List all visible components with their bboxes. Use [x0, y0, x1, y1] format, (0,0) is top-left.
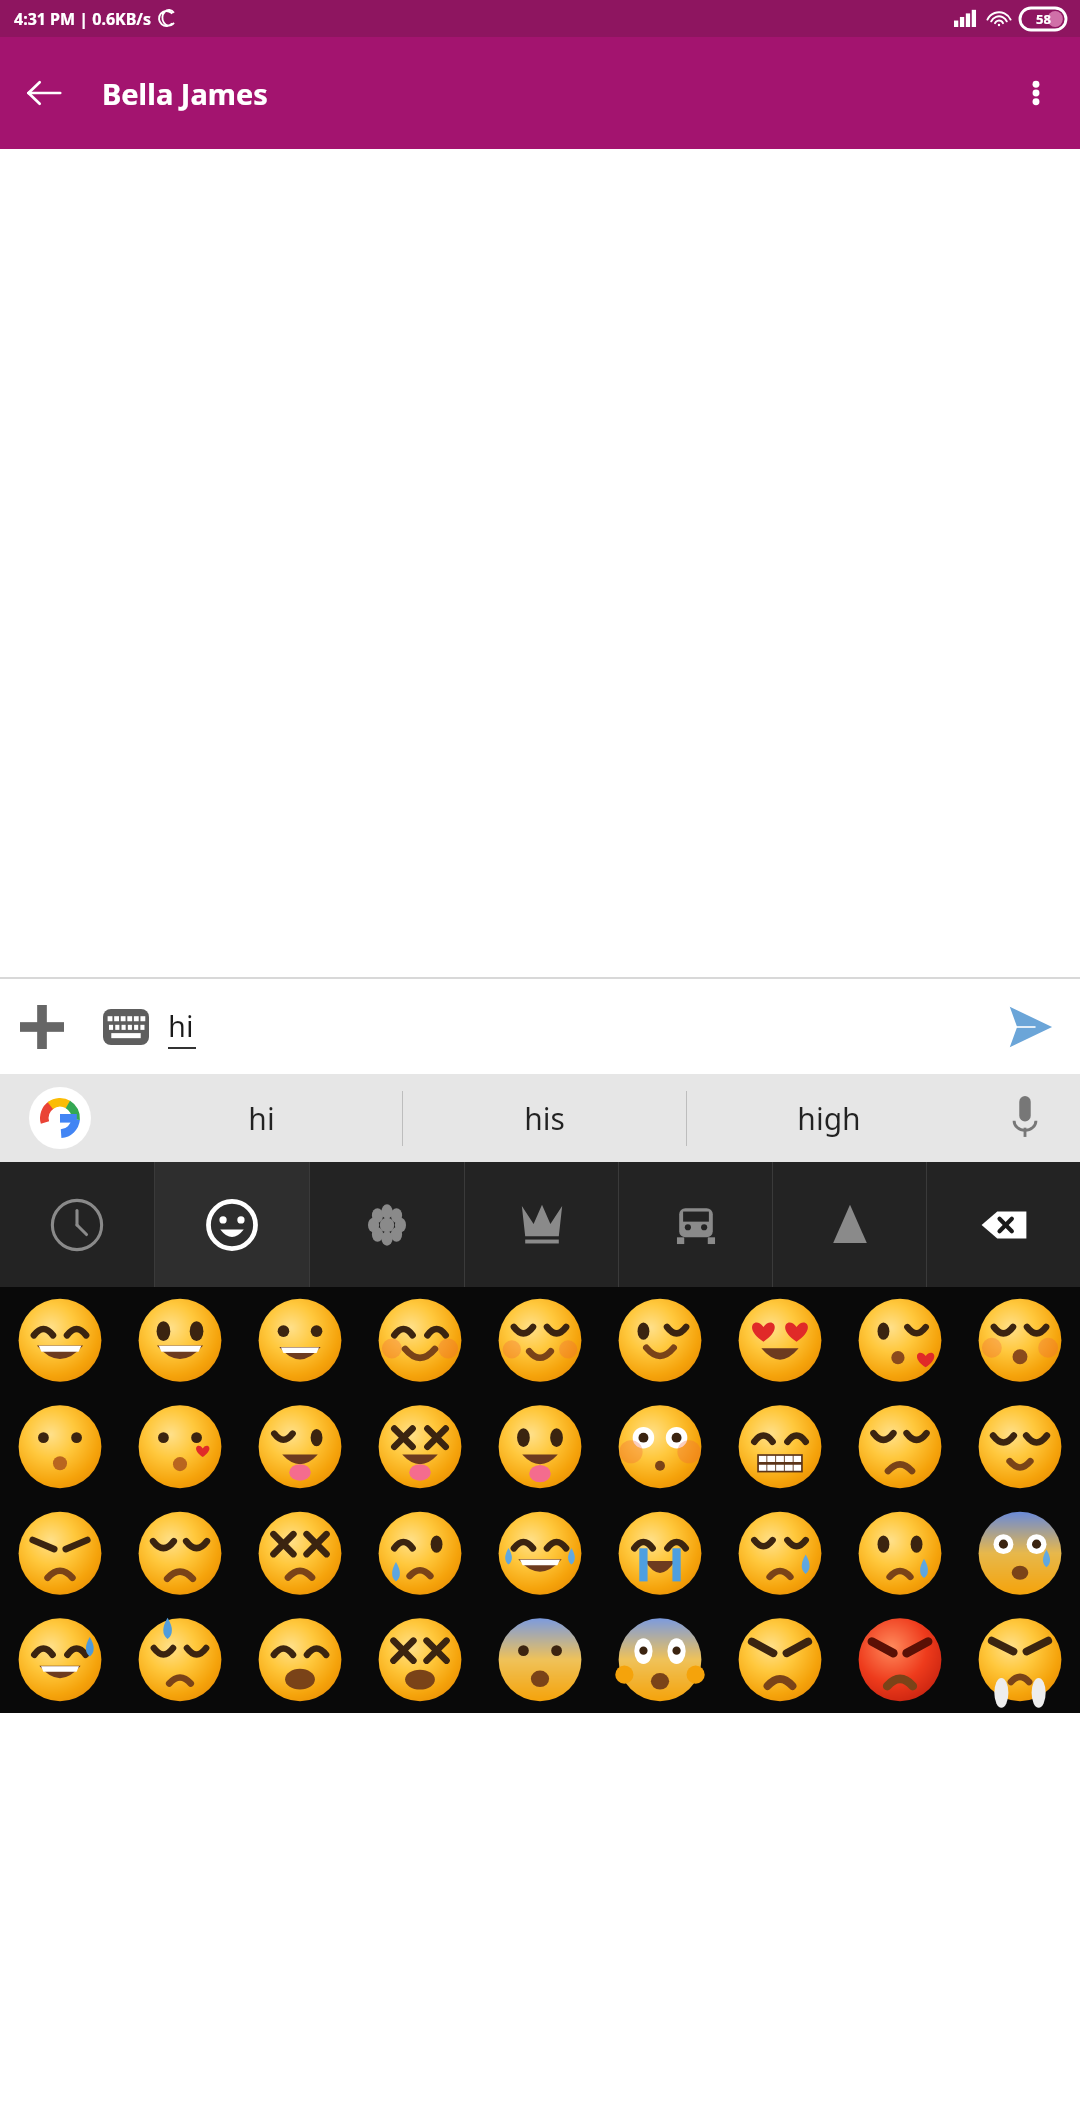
button[interactable]: Google: [0, 1074, 120, 1162]
staticText: 58: [1036, 10, 1051, 28]
button[interactable]: Send: [980, 984, 1080, 1070]
button[interactable]: Add attachment: [0, 987, 84, 1067]
button[interactable]: Symbols: [773, 1162, 926, 1287]
button[interactable]: Back: [0, 49, 88, 137]
button[interactable]: hi: [120, 1074, 402, 1162]
staticText: high: [797, 1098, 861, 1139]
staticText: hi: [248, 1098, 275, 1139]
button[interactable]: Objects: [465, 1162, 618, 1287]
button[interactable]: More options: [992, 49, 1080, 137]
button[interactable]: Delete: [927, 1162, 1080, 1287]
staticText: hi: [168, 1006, 194, 1045]
staticText: Bella James: [102, 74, 268, 113]
button[interactable]: Smileys: [155, 1162, 309, 1287]
button[interactable]: Recent: [0, 1162, 154, 1287]
button[interactable]: Voice input: [970, 1074, 1080, 1162]
button[interactable]: hi: [168, 987, 980, 1067]
button[interactable]: Travel: [619, 1162, 772, 1287]
staticText: his: [524, 1098, 565, 1139]
button[interactable]: Nature: [310, 1162, 464, 1287]
staticText: 4:31 PM | 0.6KB/s: [14, 8, 152, 30]
button[interactable]: Switch keyboard: [84, 987, 168, 1067]
button[interactable]: high: [687, 1074, 970, 1162]
button[interactable]: his: [403, 1074, 686, 1162]
